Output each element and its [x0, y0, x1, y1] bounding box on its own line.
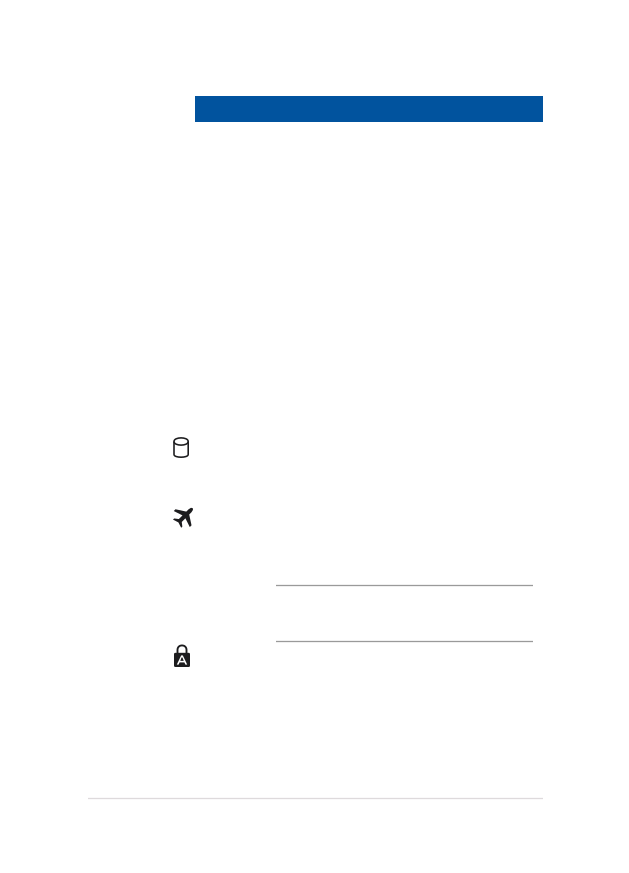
button[interactable]: Storage: [173, 437, 189, 459]
button[interactable]: Caps lock: [173, 644, 190, 668]
button[interactable]: Airplane mode: [173, 508, 194, 528]
